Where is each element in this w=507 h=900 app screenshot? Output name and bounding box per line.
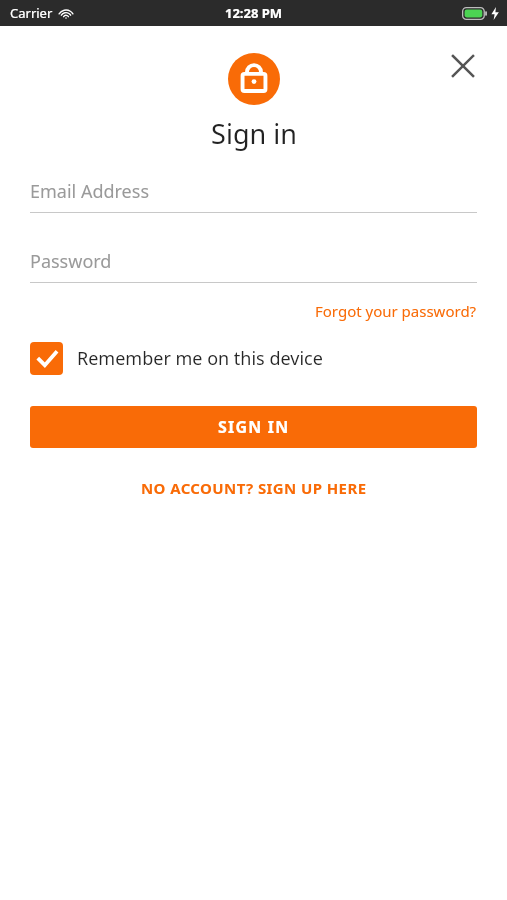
- button[interactable]: Password: [30, 246, 477, 276]
- staticText: Sign in: [211, 115, 297, 152]
- staticText: Remember me on this device: [77, 346, 323, 371]
- button[interactable]: Email Address: [30, 176, 477, 206]
- staticText: Carrier: [10, 4, 53, 22]
- staticText: Email Address: [30, 179, 150, 204]
- button[interactable]: SIGN IN: [30, 406, 477, 448]
- button[interactable]: Close: [439, 42, 487, 90]
- staticText: Password: [30, 249, 112, 274]
- staticText: NO ACCOUNT? SIGN UP HERE: [141, 478, 367, 498]
- staticText: 12:28 PM: [225, 4, 283, 22]
- button[interactable]: Forgot your password?: [315, 298, 477, 324]
- staticText: SIGN IN: [218, 416, 290, 438]
- button[interactable]: Remember me on this device: [30, 340, 323, 377]
- staticText: Forgot your password?: [315, 301, 477, 321]
- button[interactable]: NO ACCOUNT? SIGN UP HERE: [133, 474, 375, 502]
